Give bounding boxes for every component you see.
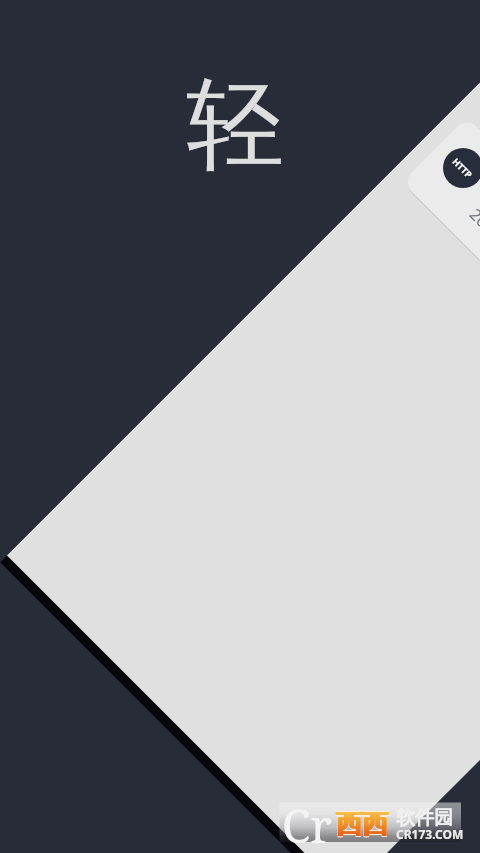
staticText: 西西	[337, 809, 389, 842]
staticText: 西西	[335, 809, 387, 842]
staticText: 西西	[336, 808, 388, 841]
staticText: 20	[465, 203, 480, 232]
staticText: CR173.COM	[396, 826, 464, 842]
staticText: 西西	[337, 807, 389, 840]
staticText: 西西	[337, 808, 389, 841]
staticText: 软件园	[396, 806, 453, 830]
staticText: 西西	[335, 807, 387, 840]
button[interactable]: HTTP request method	[443, 148, 480, 188]
button[interactable]	[402, 117, 480, 496]
staticText: 轻	[186, 64, 284, 187]
staticText: HTTP	[450, 155, 476, 181]
staticText: Cr	[282, 794, 332, 853]
staticText: 西西	[335, 808, 387, 841]
